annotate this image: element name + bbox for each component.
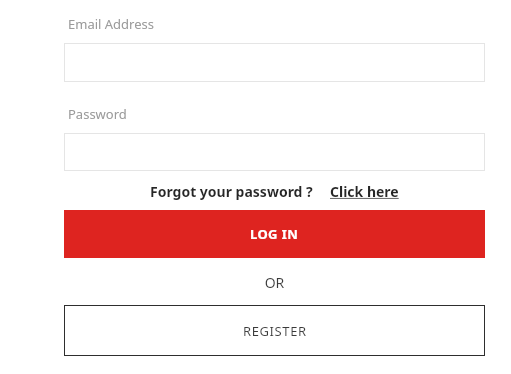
staticText: LOG IN [250,225,299,243]
staticText: Click here [330,182,399,201]
button[interactable]: Click here [330,182,399,201]
button[interactable]: LOG IN [64,210,485,258]
button[interactable]: REGISTER [64,305,485,356]
staticText: Forgot your password ? [150,182,313,201]
staticText: Password [68,105,127,123]
button[interactable]: Password input field [64,133,485,171]
staticText: Email Address [68,15,154,33]
staticText: REGISTER [243,322,307,340]
button[interactable]: Email Address input field [64,43,485,82]
staticText: OR [64,273,485,292]
